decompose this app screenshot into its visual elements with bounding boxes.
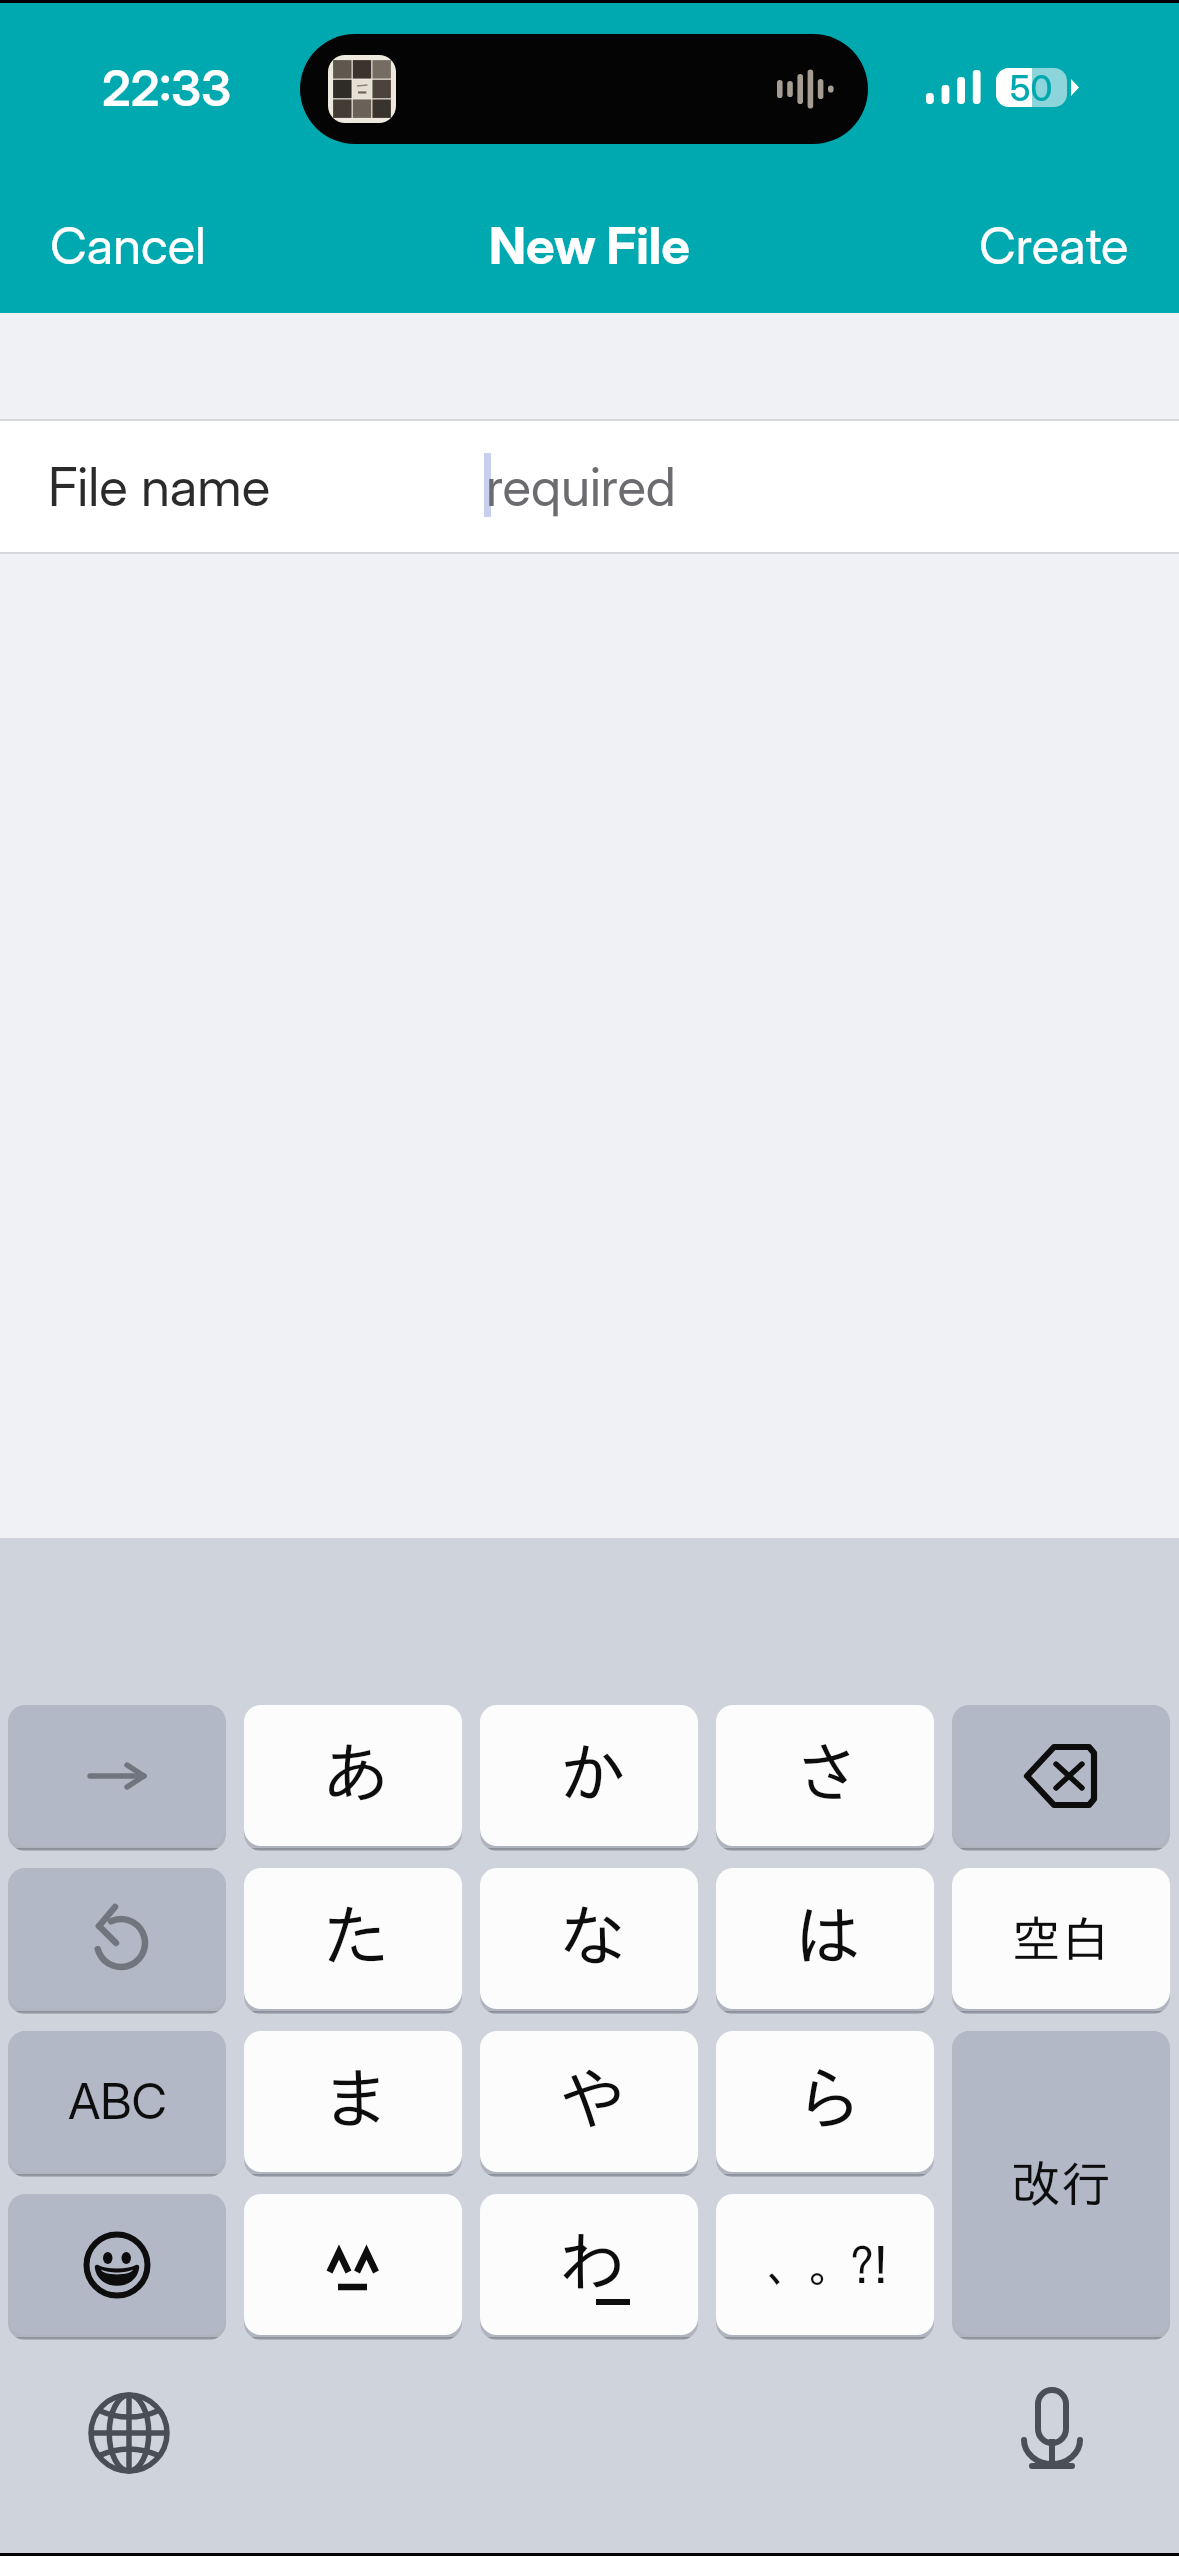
staticText: ABC bbox=[68, 2072, 167, 2131]
staticText: 改行 bbox=[1011, 2158, 1111, 2208]
button[interactable]: ま bbox=[244, 2031, 462, 2172]
button[interactable]: Create bbox=[935, 185, 1173, 307]
button[interactable]: Next candidate bbox=[8, 1705, 226, 1846]
button[interactable]: Switch keyboard bbox=[76, 2380, 181, 2485]
button[interactable]: わ bbox=[480, 2194, 698, 2335]
staticText: か bbox=[558, 1738, 626, 1806]
staticText: 22:33 bbox=[102, 59, 232, 118]
button[interactable]: な bbox=[480, 1868, 698, 2009]
button[interactable]: Undo bbox=[8, 1868, 226, 2009]
staticText: File name bbox=[48, 455, 271, 519]
staticText: Cancel bbox=[50, 215, 206, 277]
button[interactable]: ABC bbox=[8, 2031, 226, 2172]
button[interactable]: 空白 bbox=[952, 1868, 1170, 2009]
button[interactable]: Kaomoji bbox=[244, 2194, 462, 2335]
staticText: た bbox=[322, 1901, 390, 1969]
button[interactable]: さ bbox=[716, 1705, 934, 1846]
staticText: や bbox=[558, 2064, 626, 2132]
button[interactable]: Delete bbox=[952, 1705, 1170, 1846]
button[interactable]: Cancel bbox=[6, 185, 250, 307]
staticText: な bbox=[558, 1901, 626, 1969]
button[interactable]: File name bbox=[0, 421, 1179, 552]
button[interactable]: あ bbox=[244, 1705, 462, 1846]
staticText: New File bbox=[489, 215, 690, 277]
button[interactable]: 、。?! bbox=[716, 2194, 934, 2335]
button[interactable]: か bbox=[480, 1705, 698, 1846]
button[interactable]: た bbox=[244, 1868, 462, 2009]
button[interactable]: や bbox=[480, 2031, 698, 2172]
staticText: ま bbox=[322, 2064, 390, 2132]
staticText: 50 bbox=[1010, 67, 1053, 106]
button[interactable]: 改行 bbox=[952, 2031, 1170, 2335]
staticText: 空白 bbox=[1012, 1914, 1110, 1963]
staticText: あ bbox=[322, 1738, 390, 1806]
staticText: は bbox=[794, 1901, 862, 1969]
button[interactable]: Dictation bbox=[999, 2377, 1104, 2482]
staticText: さ bbox=[794, 1738, 862, 1806]
button[interactable]: ら bbox=[716, 2031, 934, 2172]
staticText: 、。?! bbox=[767, 2242, 888, 2288]
staticText: Create bbox=[979, 215, 1129, 277]
button[interactable]: は bbox=[716, 1868, 934, 2009]
staticText: わ bbox=[558, 2227, 626, 2295]
staticText: required bbox=[486, 455, 676, 519]
staticText: ら bbox=[794, 2064, 862, 2132]
button[interactable]: Emoji keyboard bbox=[8, 2194, 226, 2335]
